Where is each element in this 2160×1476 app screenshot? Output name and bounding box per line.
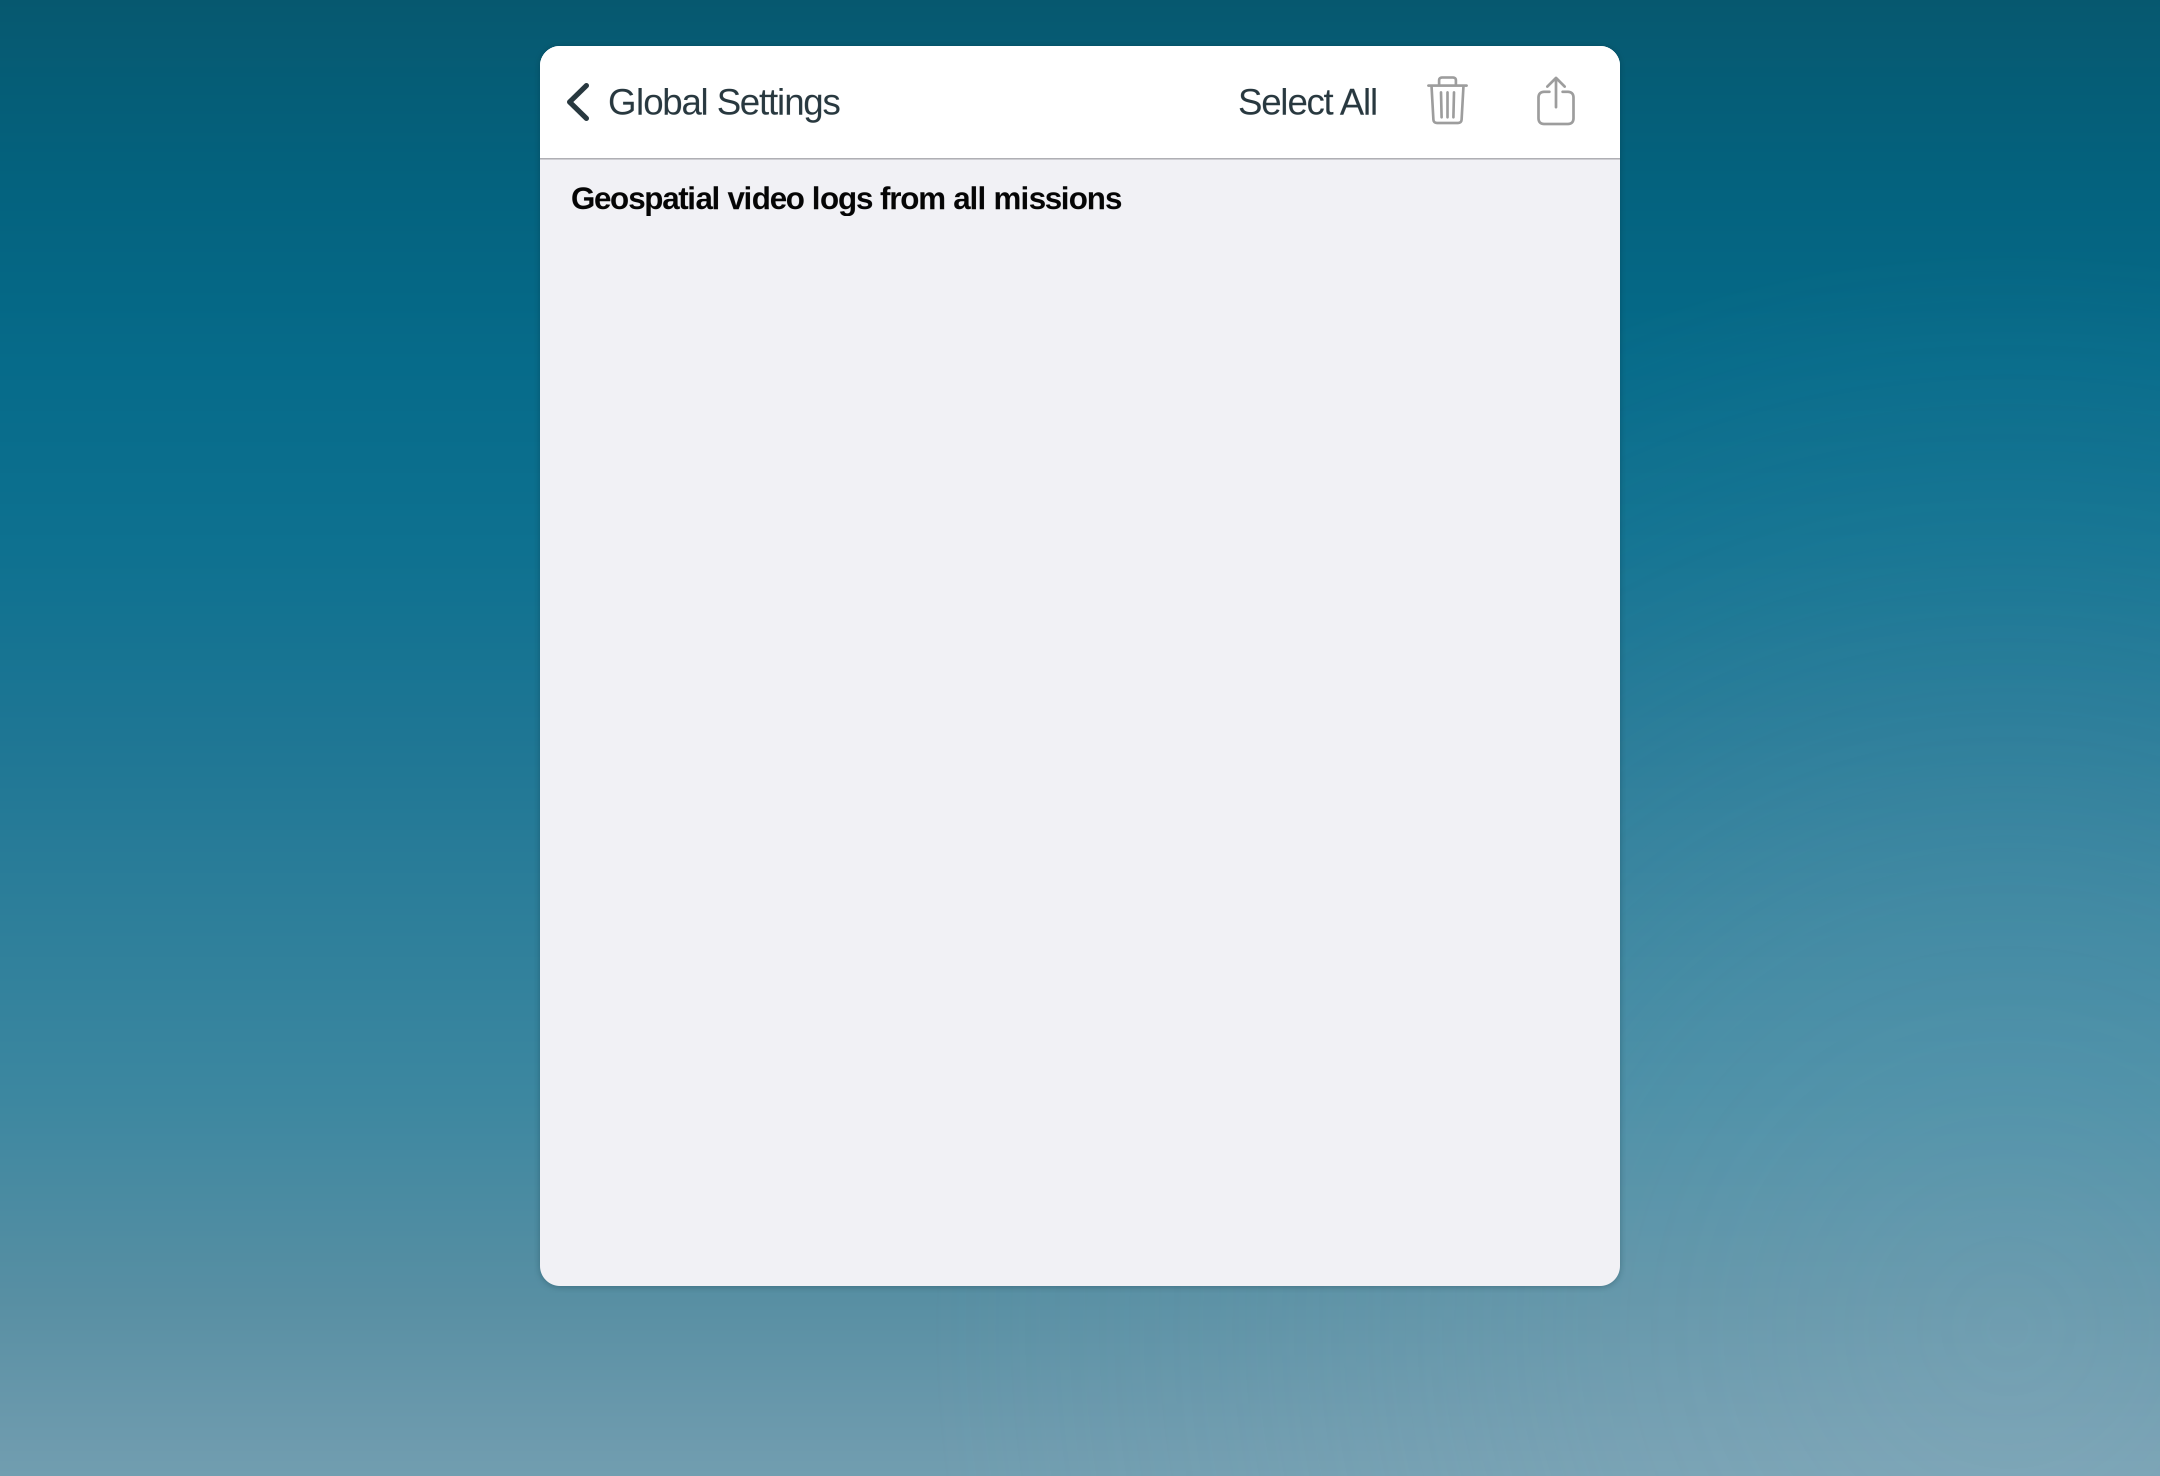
button[interactable]: Share	[1468, 46, 1620, 158]
button[interactable]: Select All	[1220, 46, 1390, 158]
staticText: Global Settings	[608, 81, 840, 122]
button[interactable]: Delete	[1390, 46, 1468, 158]
button[interactable]: Global Settings	[540, 46, 840, 158]
staticText: Select All	[1238, 81, 1378, 122]
staticText: Geospatial video logs from all missions	[571, 181, 1122, 216]
